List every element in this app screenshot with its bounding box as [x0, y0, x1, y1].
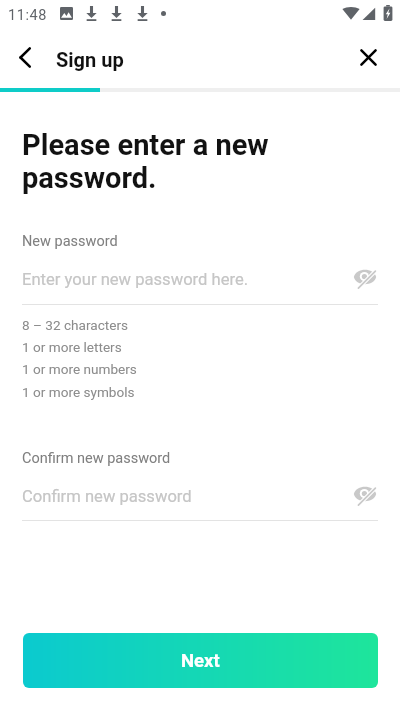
staticText: 8 – 32 characters: [22, 317, 129, 333]
button[interactable]: Next: [23, 633, 378, 688]
button[interactable]: Back: [9, 41, 42, 74]
staticText: 11:48: [8, 7, 48, 24]
staticText: New password: [22, 233, 118, 250]
staticText: Sign up: [56, 48, 124, 71]
button[interactable]: Close: [352, 41, 385, 74]
staticText: Confirm new password: [22, 487, 192, 506]
staticText: 1 or more symbols: [22, 384, 135, 400]
staticText: Please enter a new password.: [22, 128, 269, 196]
staticText: Enter your new password here.: [22, 270, 249, 289]
staticText: Next: [181, 650, 220, 672]
staticText: Confirm new password: [22, 450, 171, 467]
button[interactable]: Show confirm password: [351, 480, 379, 508]
button[interactable]: Show new password: [351, 263, 379, 291]
staticText: 1 or more letters: [22, 339, 122, 355]
staticText: 1 or more numbers: [22, 361, 137, 377]
